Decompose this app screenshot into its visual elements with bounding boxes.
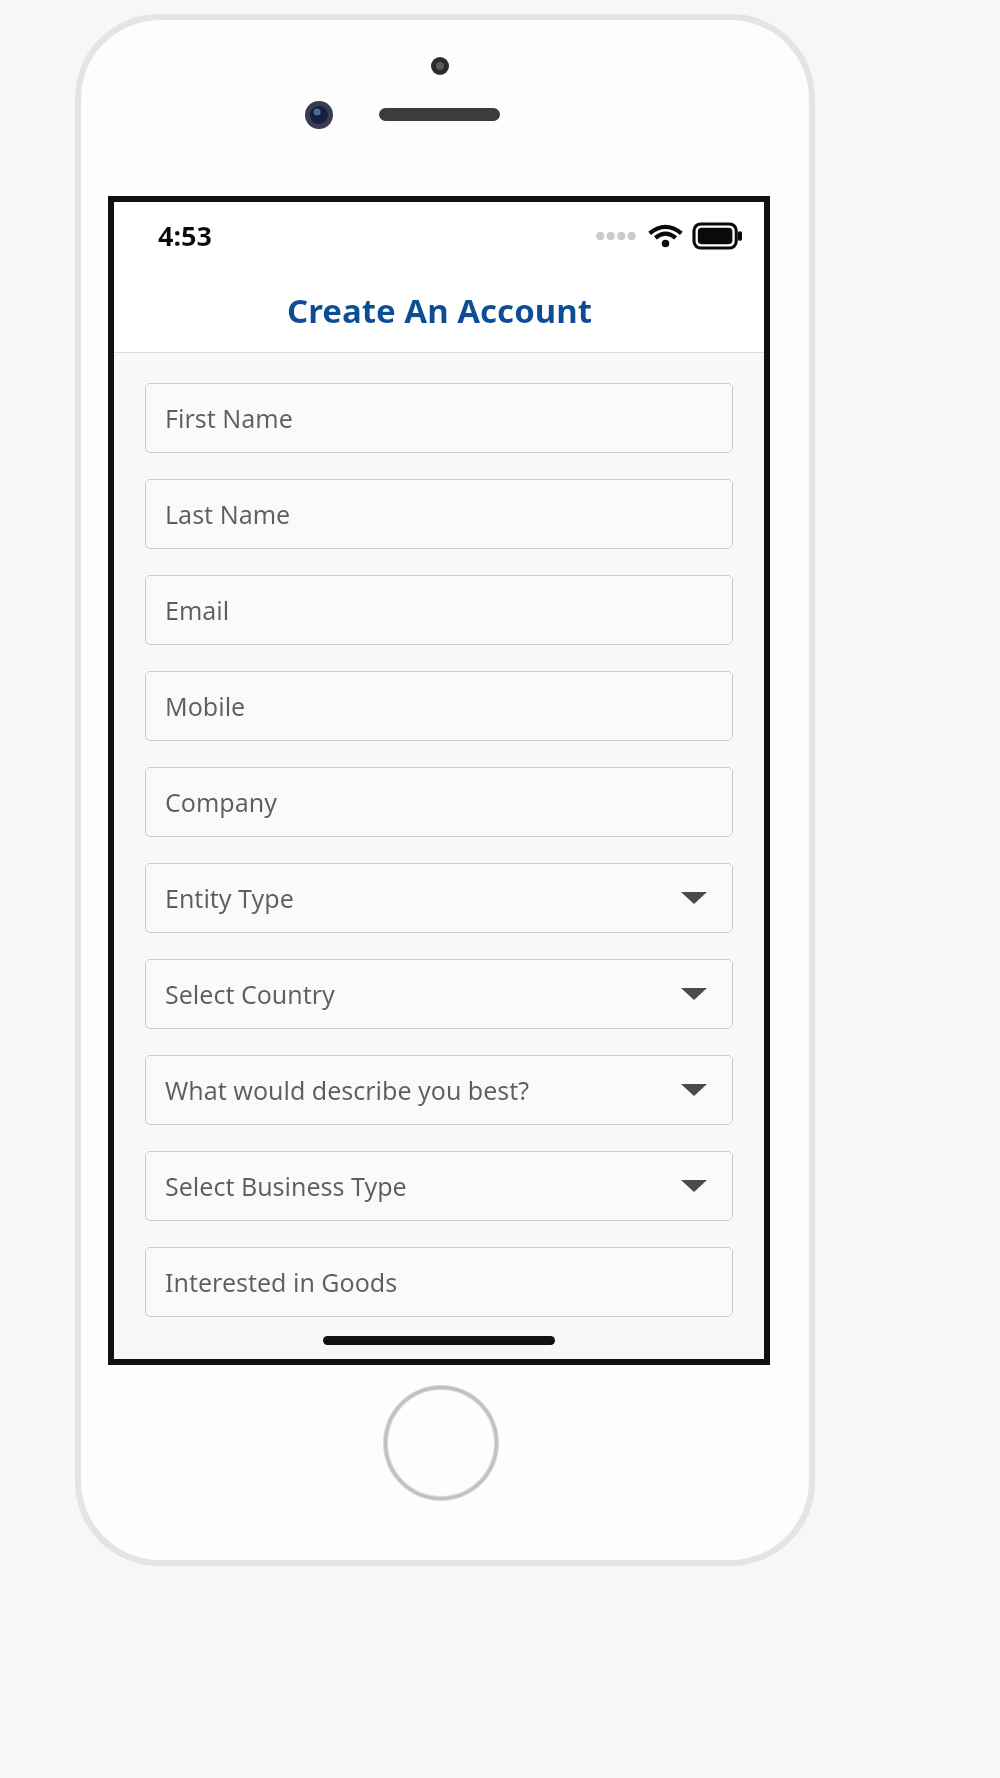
staticText: First Name	[165, 401, 293, 435]
staticText: 4:53	[158, 217, 212, 254]
button[interactable]: Select Country	[145, 959, 733, 1029]
staticText: Select Business Type	[165, 1169, 407, 1203]
button[interactable]: What would describe you best?	[145, 1055, 733, 1125]
button[interactable]: Select Business Type	[145, 1151, 733, 1221]
button[interactable]: Email	[145, 575, 733, 645]
button[interactable]: Last Name	[145, 479, 733, 549]
button[interactable]: Entity Type	[145, 863, 733, 933]
staticText: Mobile	[165, 689, 246, 723]
staticText: Email	[165, 593, 230, 627]
button[interactable]: Mobile	[145, 671, 733, 741]
staticText: Select Country	[165, 977, 335, 1011]
button[interactable]: First Name	[145, 383, 733, 453]
staticText: Create An Account	[287, 288, 592, 333]
other: Open Select Country options	[681, 986, 707, 1002]
staticText: What would describe you best?	[165, 1073, 530, 1107]
other: Open Entity Type options	[681, 890, 707, 906]
staticText: Last Name	[165, 497, 291, 531]
button[interactable]: Company	[145, 767, 733, 837]
button[interactable]: Interested in Goods	[145, 1247, 733, 1317]
staticText: Company	[165, 785, 277, 819]
other: Open Select Business Type options	[681, 1178, 707, 1194]
staticText: Interested in Goods	[165, 1265, 398, 1299]
staticText: Entity Type	[165, 881, 294, 915]
other: Open What would describe you best? optio…	[681, 1082, 707, 1098]
